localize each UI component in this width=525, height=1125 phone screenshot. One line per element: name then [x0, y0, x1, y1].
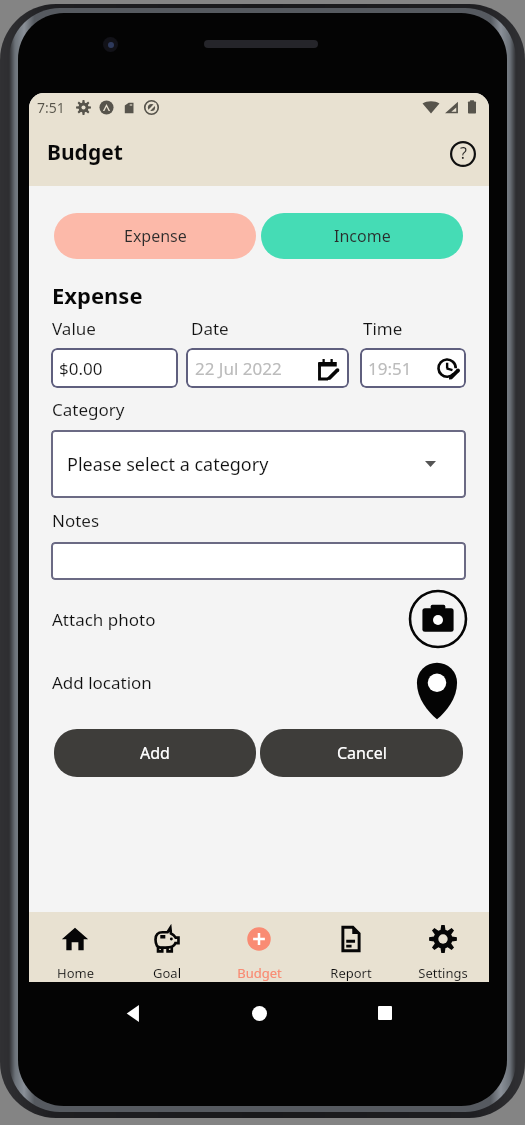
- button[interactable]: Goal: [121, 912, 213, 982]
- staticText: Please select a category: [67, 452, 269, 477]
- staticText: Income: [334, 225, 391, 247]
- staticText: Goal: [153, 964, 181, 982]
- staticText: Budget: [237, 964, 282, 982]
- staticText: 7:51: [37, 98, 65, 117]
- button[interactable]: Recent apps: [363, 991, 407, 1035]
- button[interactable]: Back: [111, 991, 155, 1035]
- button[interactable]: Please select a category: [51, 430, 466, 498]
- staticText: Report: [330, 964, 372, 982]
- staticText: Value: [52, 317, 191, 340]
- button[interactable]: Income: [261, 213, 463, 259]
- staticText: Category: [52, 398, 125, 421]
- staticText: Home: [57, 964, 94, 982]
- button[interactable]: Home: [29, 912, 121, 982]
- staticText: 22 Jul 2022: [195, 357, 282, 380]
- button[interactable]: Help: [445, 136, 481, 172]
- staticText: Cancel: [337, 742, 387, 764]
- button[interactable]: Attach photo: [52, 589, 467, 649]
- button[interactable]: Cancel: [260, 729, 463, 777]
- staticText: Settings: [418, 964, 468, 982]
- staticText: Add: [140, 742, 170, 764]
- staticText: Expense: [124, 225, 187, 247]
- button[interactable]: Report: [305, 912, 397, 982]
- staticText: 19:51: [368, 357, 412, 380]
- button[interactable]: 22 Jul 2022: [186, 348, 349, 388]
- staticText: Expense: [52, 280, 143, 310]
- button[interactable]: Add location: [52, 652, 467, 712]
- staticText: Time: [363, 317, 403, 340]
- button[interactable]: Add: [54, 729, 256, 777]
- staticText: Notes: [52, 509, 100, 532]
- button[interactable]: [51, 542, 466, 580]
- staticText: ?: [460, 142, 467, 164]
- staticText: Date: [191, 317, 363, 340]
- button[interactable]: Settings: [397, 912, 489, 982]
- button[interactable]: 19:51: [360, 348, 466, 388]
- button[interactable]: Budget: [213, 912, 305, 982]
- button[interactable]: Home: [237, 991, 281, 1035]
- staticText: Attach photo: [52, 608, 156, 631]
- staticText: Add location: [52, 671, 152, 694]
- staticText: $0.00: [59, 357, 103, 380]
- button[interactable]: Expense: [54, 213, 256, 259]
- button[interactable]: $0.00: [51, 348, 178, 388]
- staticText: Budget: [47, 138, 123, 167]
